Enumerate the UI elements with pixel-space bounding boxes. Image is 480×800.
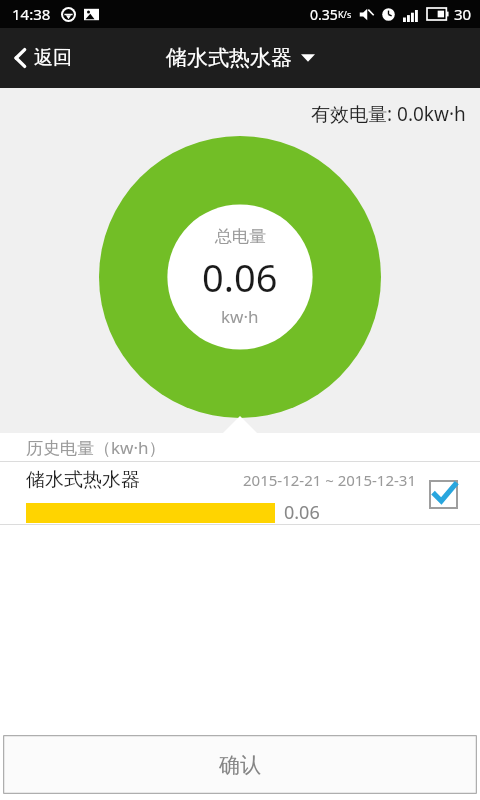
staticText: 确认 (219, 752, 261, 778)
staticText: 历史电量（kw·h） (26, 436, 166, 459)
button[interactable]: 返回 (0, 36, 86, 80)
staticText: 总电量 (215, 226, 266, 247)
staticText: 0.06 (202, 251, 278, 303)
button[interactable]: 储水式热水器 (0, 462, 480, 525)
button[interactable]: 储水式热水器 (156, 37, 325, 79)
staticText: 返回 (34, 46, 72, 70)
staticText: 2015-12-21 ~ 2015-12-31 (243, 470, 416, 490)
staticText: 储水式热水器 (166, 45, 292, 71)
button[interactable]: 确认 (3, 735, 477, 794)
staticText: 储水式热水器 (26, 468, 140, 492)
staticText: 0.06 (284, 500, 320, 525)
staticText: K/s (338, 8, 352, 20)
staticText: 30 (454, 4, 472, 24)
staticText: 0.35 (310, 5, 338, 24)
staticText: 有效电量: 0.0kw·h (311, 101, 466, 127)
staticText: 14:38 (12, 4, 51, 24)
button[interactable]: Select 储水式热水器 (426, 477, 460, 511)
staticText: kw·h (221, 305, 259, 328)
